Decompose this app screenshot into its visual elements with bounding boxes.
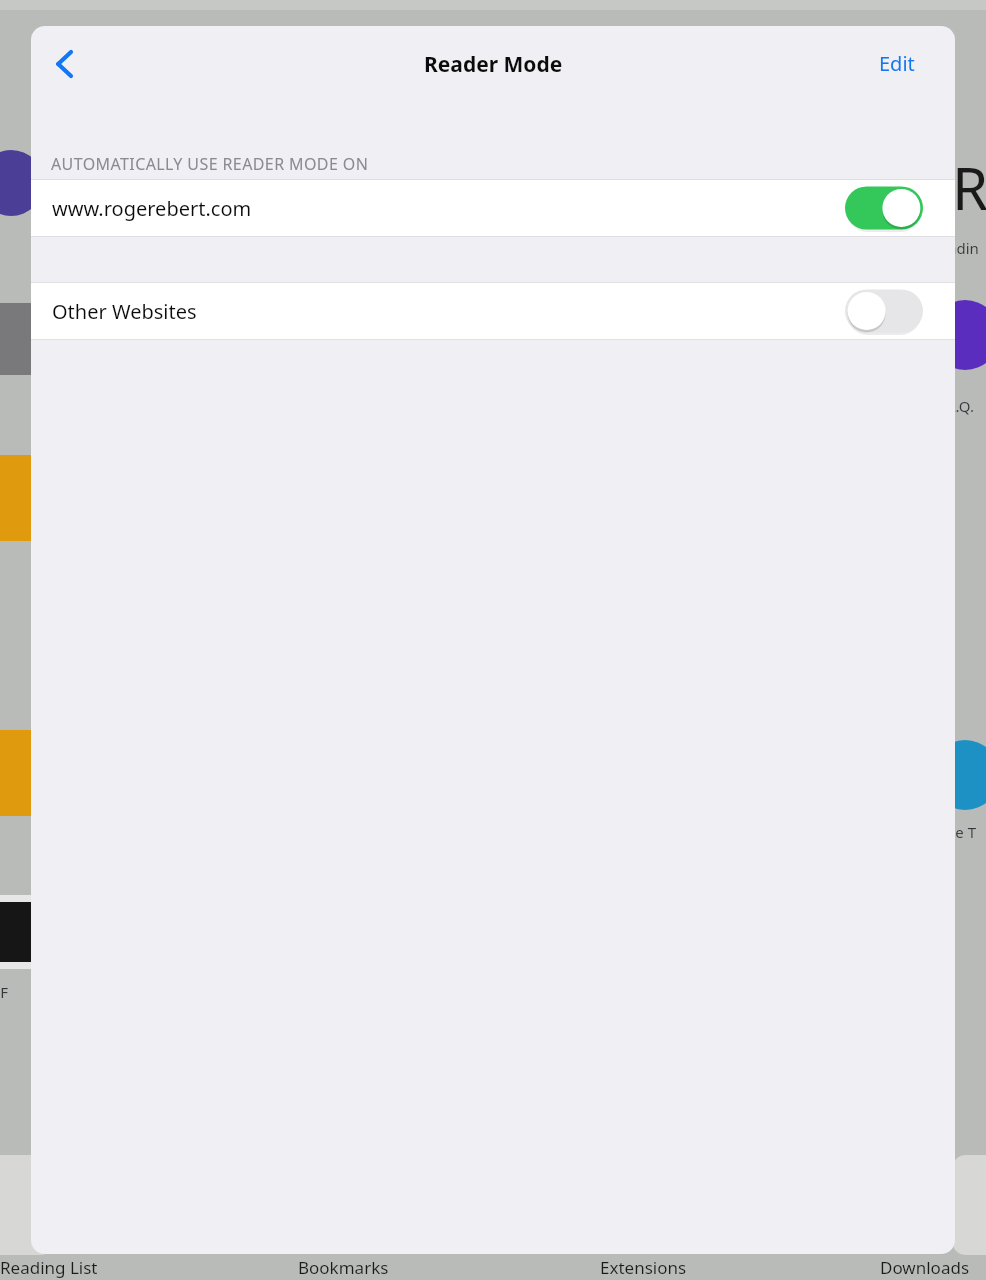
button[interactable]: Extensions [600,1256,687,1279]
button[interactable]: Bookmarks [298,1256,389,1279]
staticText: Reader Mode [424,50,563,79]
staticText: Edit [879,50,915,77]
staticText: Downloads [880,1256,970,1279]
button[interactable]: Edit [879,50,915,77]
button[interactable]: Off [845,288,923,334]
staticText: R [952,148,986,227]
staticText: AUTOMATICALLY USE READER MODE ON [51,153,369,175]
staticText: Reading List [0,1256,98,1279]
button[interactable]: On [845,185,923,231]
staticText: A.Q. [946,396,974,416]
button[interactable]: Reading List [0,1256,98,1279]
staticText: ue T [946,822,976,842]
staticText: Extensions [600,1256,687,1279]
staticText: Bookmarks [298,1256,389,1279]
button[interactable]: Other Websites [31,283,955,339]
button[interactable]: www.rogerebert.com [31,180,955,236]
staticText: Search or enter website [408,21,597,44]
button[interactable]: Back [37,36,93,92]
staticText: Other Websites [52,298,197,325]
staticText: adin [948,238,979,258]
button[interactable]: Downloads [880,1256,970,1279]
staticText: www.rogerebert.com [52,195,252,222]
staticText: on F [0,982,9,1002]
